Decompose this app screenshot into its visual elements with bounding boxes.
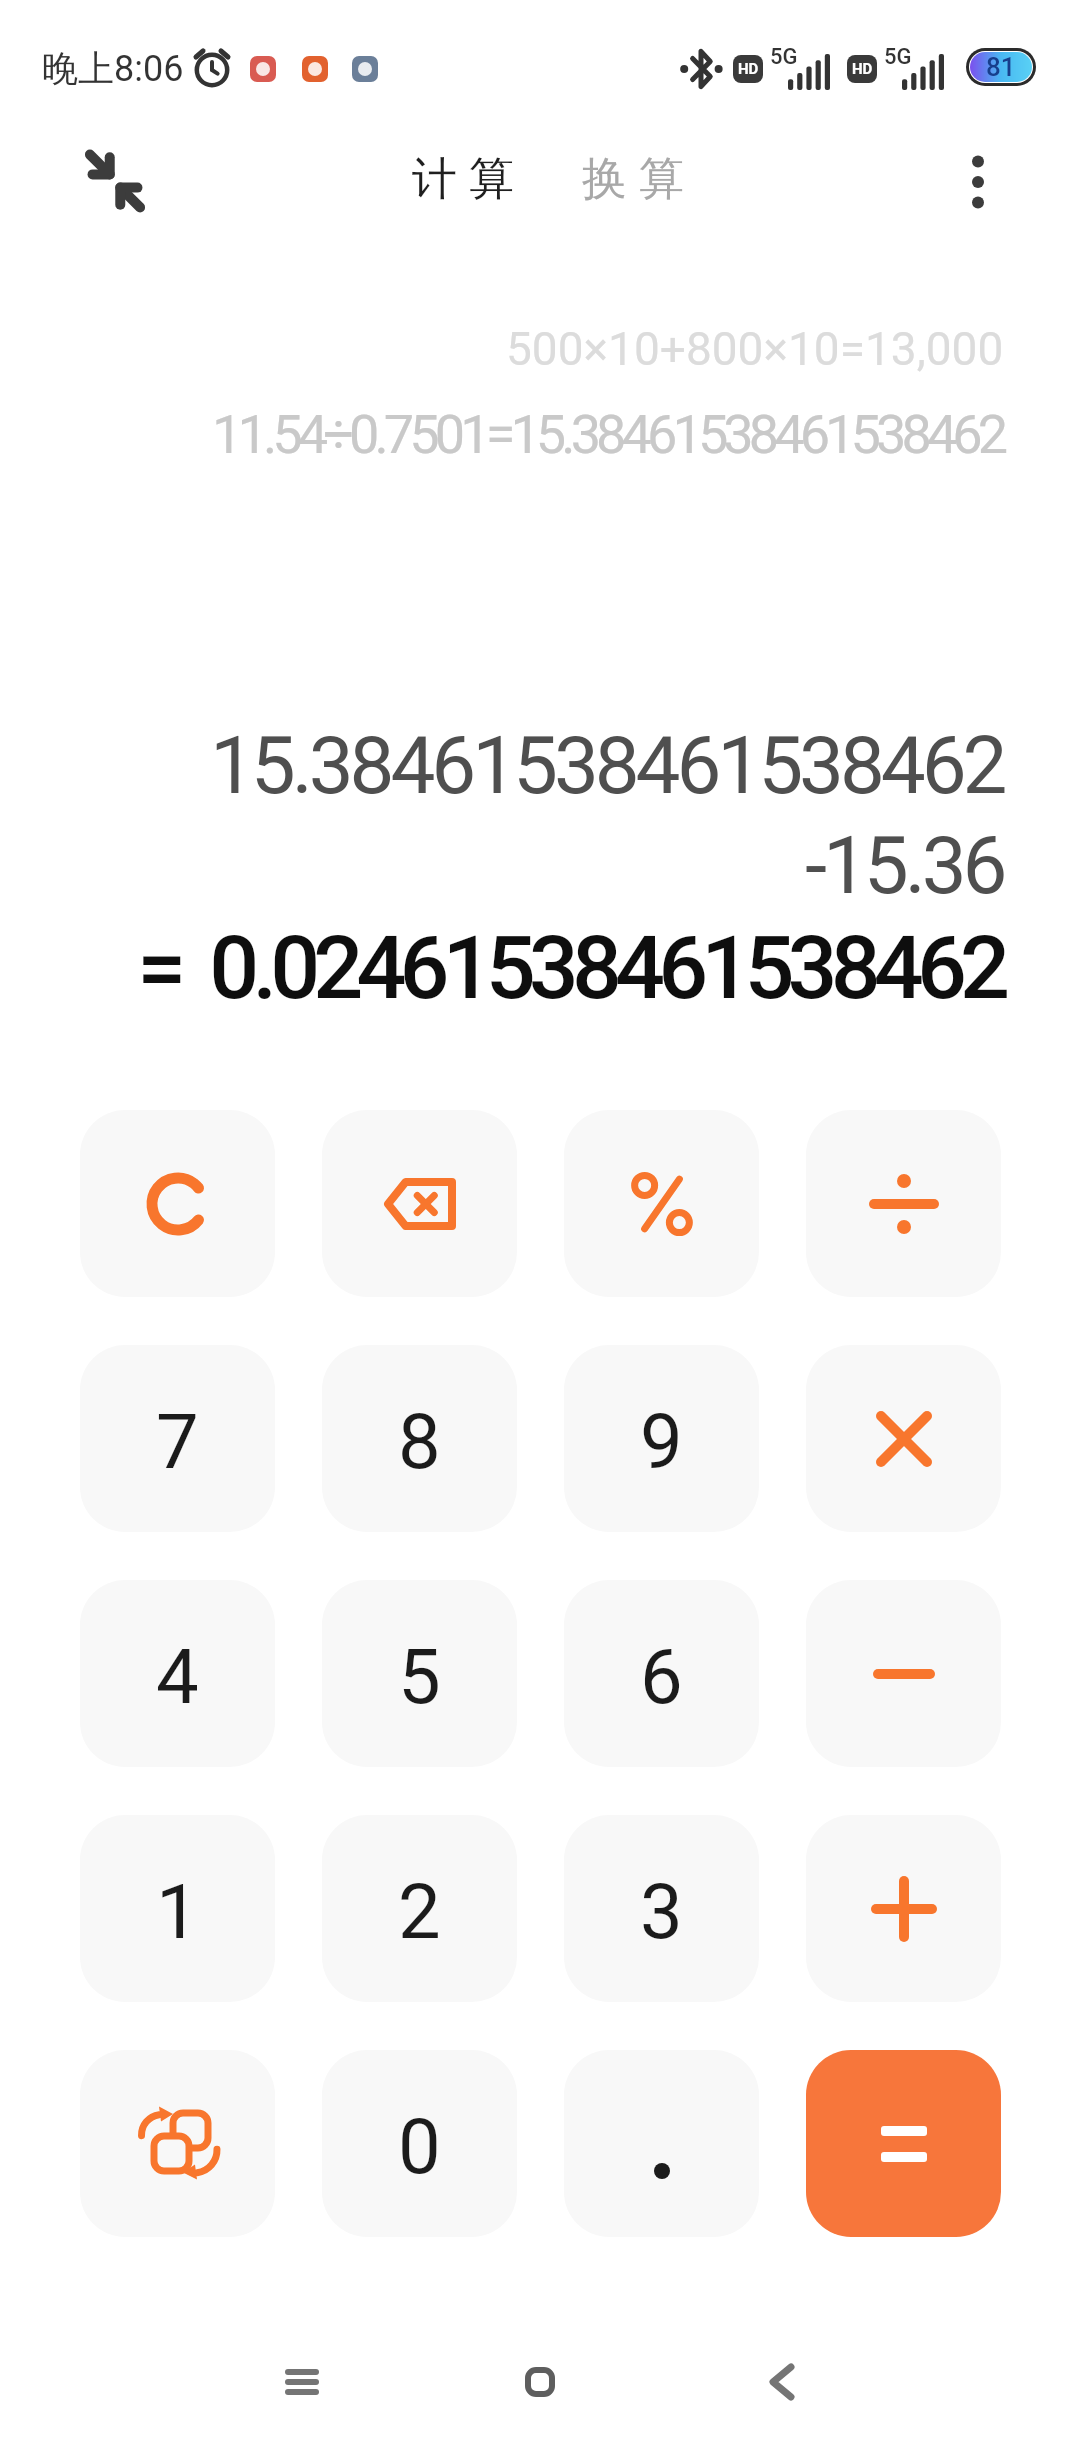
button[interactable]: 5 (322, 1580, 517, 1767)
staticText: 计算 (406, 151, 520, 208)
button[interactable] (806, 1110, 1001, 1297)
staticText: 5 (398, 1632, 441, 1721)
staticText: HD (738, 60, 759, 78)
staticText: 0 (398, 2102, 441, 2191)
button[interactable]: 计算 (406, 151, 520, 208)
staticText: 2 (398, 1867, 441, 1956)
staticText: 6 (640, 1632, 683, 1721)
button[interactable] (806, 1815, 1001, 2002)
staticText: 81 (986, 52, 1016, 82)
button[interactable] (272, 2352, 332, 2412)
button[interactable]: 1 (80, 1815, 275, 2002)
staticText: 7 (156, 1397, 199, 1486)
staticText: 15.38461538461538462 (210, 719, 1004, 813)
button[interactable] (806, 2050, 1001, 2237)
button[interactable] (806, 1580, 1001, 1767)
staticText: 4 (156, 1632, 199, 1721)
staticText: 1 (156, 1867, 199, 1956)
button[interactable] (752, 2352, 812, 2412)
button[interactable]: 6 (564, 1580, 759, 1767)
button[interactable]: 2 (322, 1815, 517, 2002)
staticText: HD (852, 60, 873, 78)
button[interactable] (80, 1110, 275, 1297)
button[interactable]: 换算 (576, 151, 690, 208)
staticText: = 0.02461538461538462 (137, 916, 1004, 1019)
button[interactable] (564, 1110, 759, 1297)
button[interactable]: 8 (322, 1345, 517, 1532)
staticText: -15.36 (805, 819, 1004, 913)
button[interactable] (510, 2352, 570, 2412)
staticText: 500×10+800×10=13,000 (506, 322, 1004, 376)
staticText: 9 (640, 1397, 683, 1486)
staticText: 换算 (576, 151, 690, 208)
button[interactable] (322, 1110, 517, 1297)
button[interactable]: 3 (564, 1815, 759, 2002)
staticText: 11.54÷0.7501=15.38461538461538462 (212, 403, 1004, 466)
staticText: 晚上8:06 (42, 46, 184, 91)
staticText: 8 (398, 1397, 441, 1486)
button[interactable]: 7 (80, 1345, 275, 1532)
staticText: 5G (884, 44, 912, 70)
button[interactable] (80, 2050, 275, 2237)
button[interactable] (946, 150, 1010, 214)
button[interactable]: 4 (80, 1580, 275, 1767)
button[interactable] (806, 1345, 1001, 1532)
button[interactable]: 9 (564, 1345, 759, 1532)
button[interactable]: 0 (322, 2050, 517, 2237)
staticText: 5G (770, 44, 798, 70)
button[interactable] (564, 2050, 759, 2237)
button[interactable] (82, 148, 148, 214)
staticText: 3 (640, 1867, 683, 1956)
